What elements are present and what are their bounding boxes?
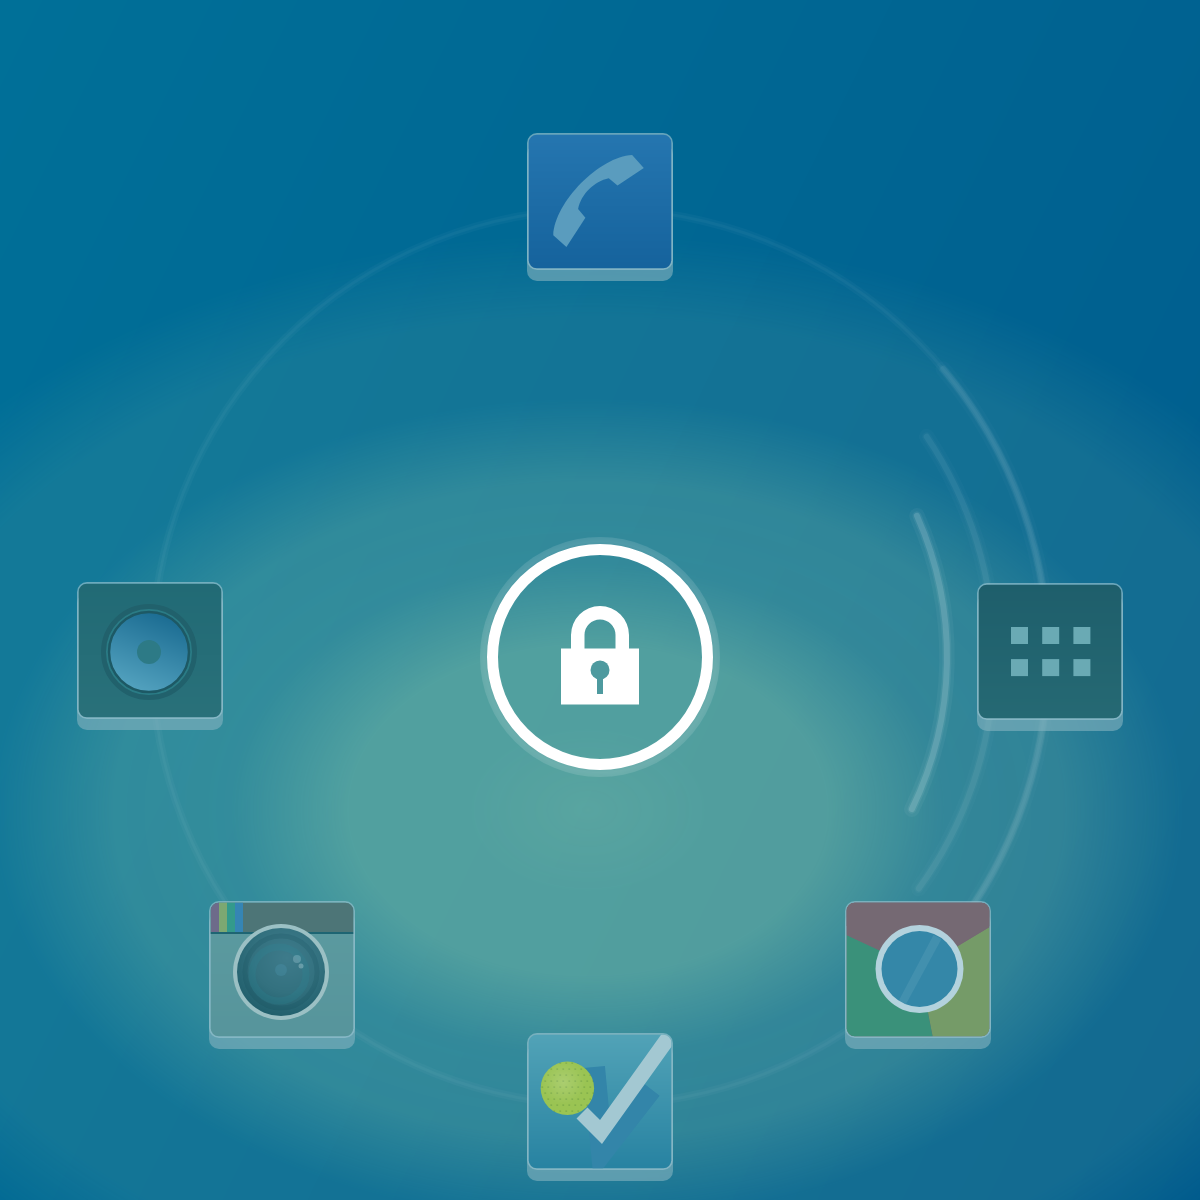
button[interactable]: Foursquare bbox=[527, 1033, 673, 1191]
button[interactable]: Apps bbox=[977, 583, 1123, 741]
button[interactable]: Chrome bbox=[845, 901, 991, 1059]
button[interactable]: Camera bbox=[209, 901, 355, 1059]
button[interactable]: Music bbox=[77, 582, 223, 740]
button[interactable]: Phone bbox=[527, 133, 673, 291]
button[interactable]: Unlock bbox=[480, 537, 720, 777]
